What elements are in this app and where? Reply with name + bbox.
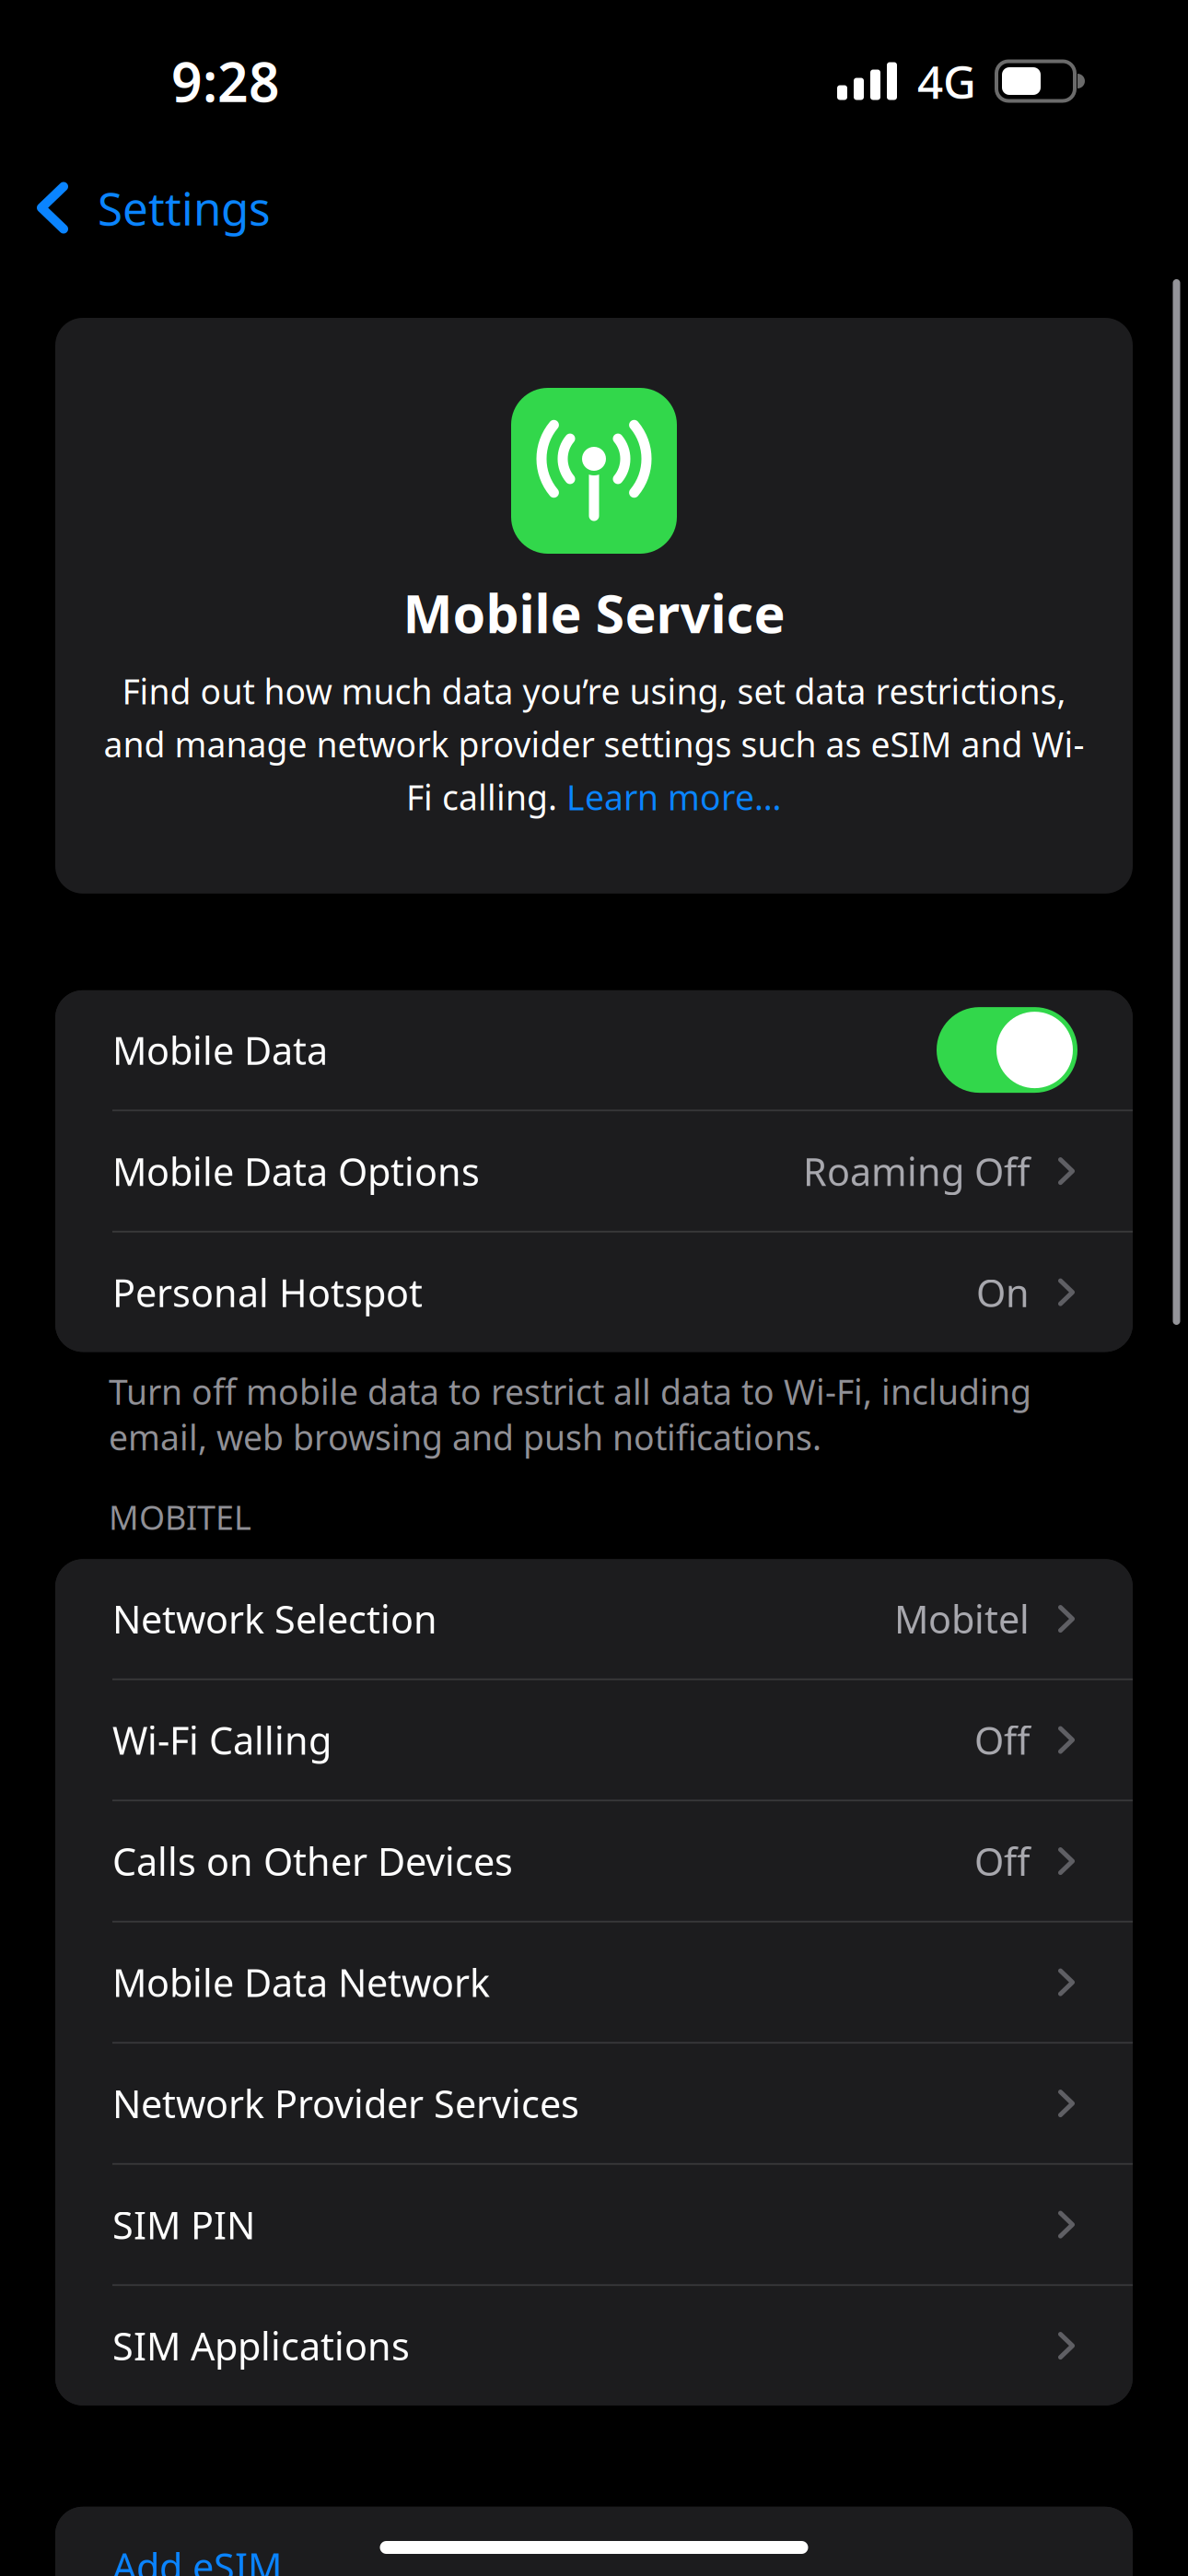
button[interactable]: Calls on Other Devices [55, 1801, 1133, 1921]
button[interactable]: SIM PIN [55, 2165, 1133, 2284]
staticText: Calls on Other Devices [112, 1836, 513, 1886]
button[interactable]: Mobile Data Network [55, 1923, 1133, 2042]
staticText: Off [974, 1836, 1030, 1886]
staticText: Wi-Fi Calling [112, 1715, 332, 1765]
button[interactable]: Wi-Fi Calling [55, 1680, 1133, 1800]
button[interactable]: Add eSIM [55, 2507, 1133, 2576]
button[interactable]: Settings [0, 162, 271, 253]
button[interactable]: Mobile Data Options [55, 1111, 1133, 1231]
staticText: SIM Applications [112, 2320, 410, 2371]
staticText: Find out how much data you’re using, set… [122, 668, 1066, 714]
button[interactable]: Learn more… [566, 774, 782, 820]
staticText: Add eSIM [112, 2541, 282, 2576]
staticText: Network Selection [112, 1594, 437, 1644]
button[interactable]: Personal Hotspot [55, 1233, 1133, 1352]
staticText: Mobile Service [403, 578, 785, 648]
staticText: Off [974, 1715, 1030, 1765]
staticText: 9:28 [171, 45, 280, 117]
staticText: Mobile Data [112, 1025, 328, 1075]
staticText: Turn off mobile data to restrict all dat… [109, 1369, 1031, 1414]
staticText: Mobile Data Options [112, 1146, 480, 1196]
staticText: Learn more… [566, 774, 782, 820]
staticText: Mobile Data Network [112, 1957, 490, 2008]
staticText: and manage network provider settings suc… [104, 721, 1084, 767]
staticText: Roaming Off [803, 1146, 1030, 1196]
button[interactable]: Network Selection [55, 1559, 1133, 1678]
staticText: 4G [917, 51, 976, 111]
button[interactable]: Mobile Data [55, 990, 1133, 1110]
button[interactable]: Network Provider Services [55, 2044, 1133, 2163]
staticText: Mobitel [894, 1594, 1030, 1644]
staticText: On [976, 1267, 1030, 1318]
staticText: SIM PIN [112, 2199, 255, 2250]
staticText: Personal Hotspot [112, 1267, 423, 1318]
button[interactable]: SIM Applications [55, 2286, 1133, 2405]
staticText: MOBITEL [109, 1495, 251, 1539]
staticText: Settings [98, 178, 271, 238]
staticText: Network Provider Services [112, 2078, 579, 2129]
staticText: email, web browsing and push notificatio… [109, 1414, 821, 1460]
staticText: Fi calling. [406, 774, 566, 820]
